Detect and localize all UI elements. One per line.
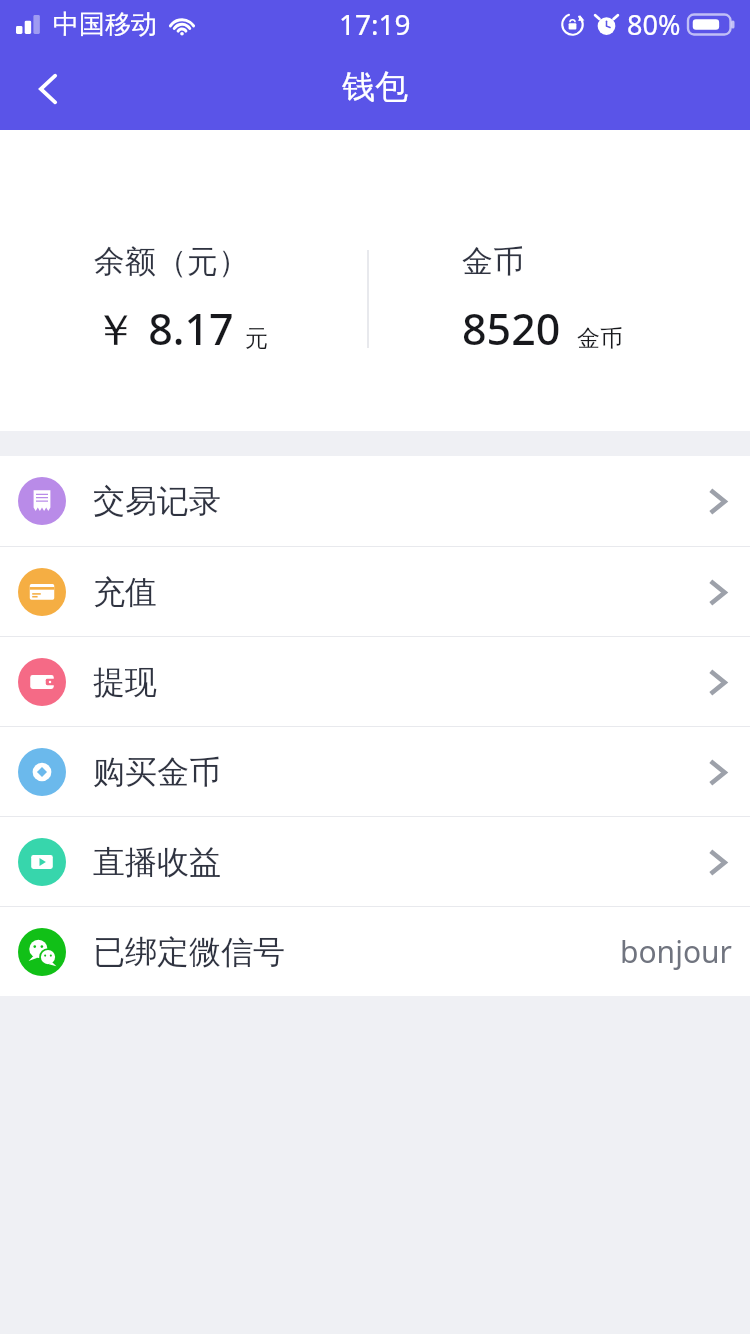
button[interactable]: 交易记录	[0, 456, 750, 546]
staticText: 已绑定微信号	[93, 932, 285, 972]
staticText: 17:19	[339, 5, 411, 43]
staticText: 提现	[93, 662, 157, 702]
staticText: 80%	[627, 6, 681, 43]
staticText: 金币	[577, 324, 623, 353]
staticText: 元	[245, 324, 268, 353]
staticText: 充值	[93, 572, 157, 612]
staticText: ￥ 8.17	[94, 299, 234, 358]
staticText: 交易记录	[93, 481, 221, 521]
staticText: 金币	[462, 242, 524, 281]
button[interactable]: 充值	[0, 547, 750, 636]
button[interactable]: 购买金币	[0, 727, 750, 816]
staticText: 购买金币	[93, 752, 221, 792]
staticText: bonjour	[620, 931, 732, 972]
button[interactable]: Back	[10, 51, 86, 127]
staticText: 钱包	[342, 66, 408, 108]
button[interactable]: 已绑定微信号	[0, 907, 750, 996]
button[interactable]: 提现	[0, 637, 750, 726]
staticText: 中国移动	[53, 8, 157, 41]
button[interactable]: 直播收益	[0, 817, 750, 906]
staticText: 直播收益	[93, 842, 221, 882]
staticText: 余额（元）	[94, 242, 249, 281]
staticText: 8520	[462, 299, 561, 358]
